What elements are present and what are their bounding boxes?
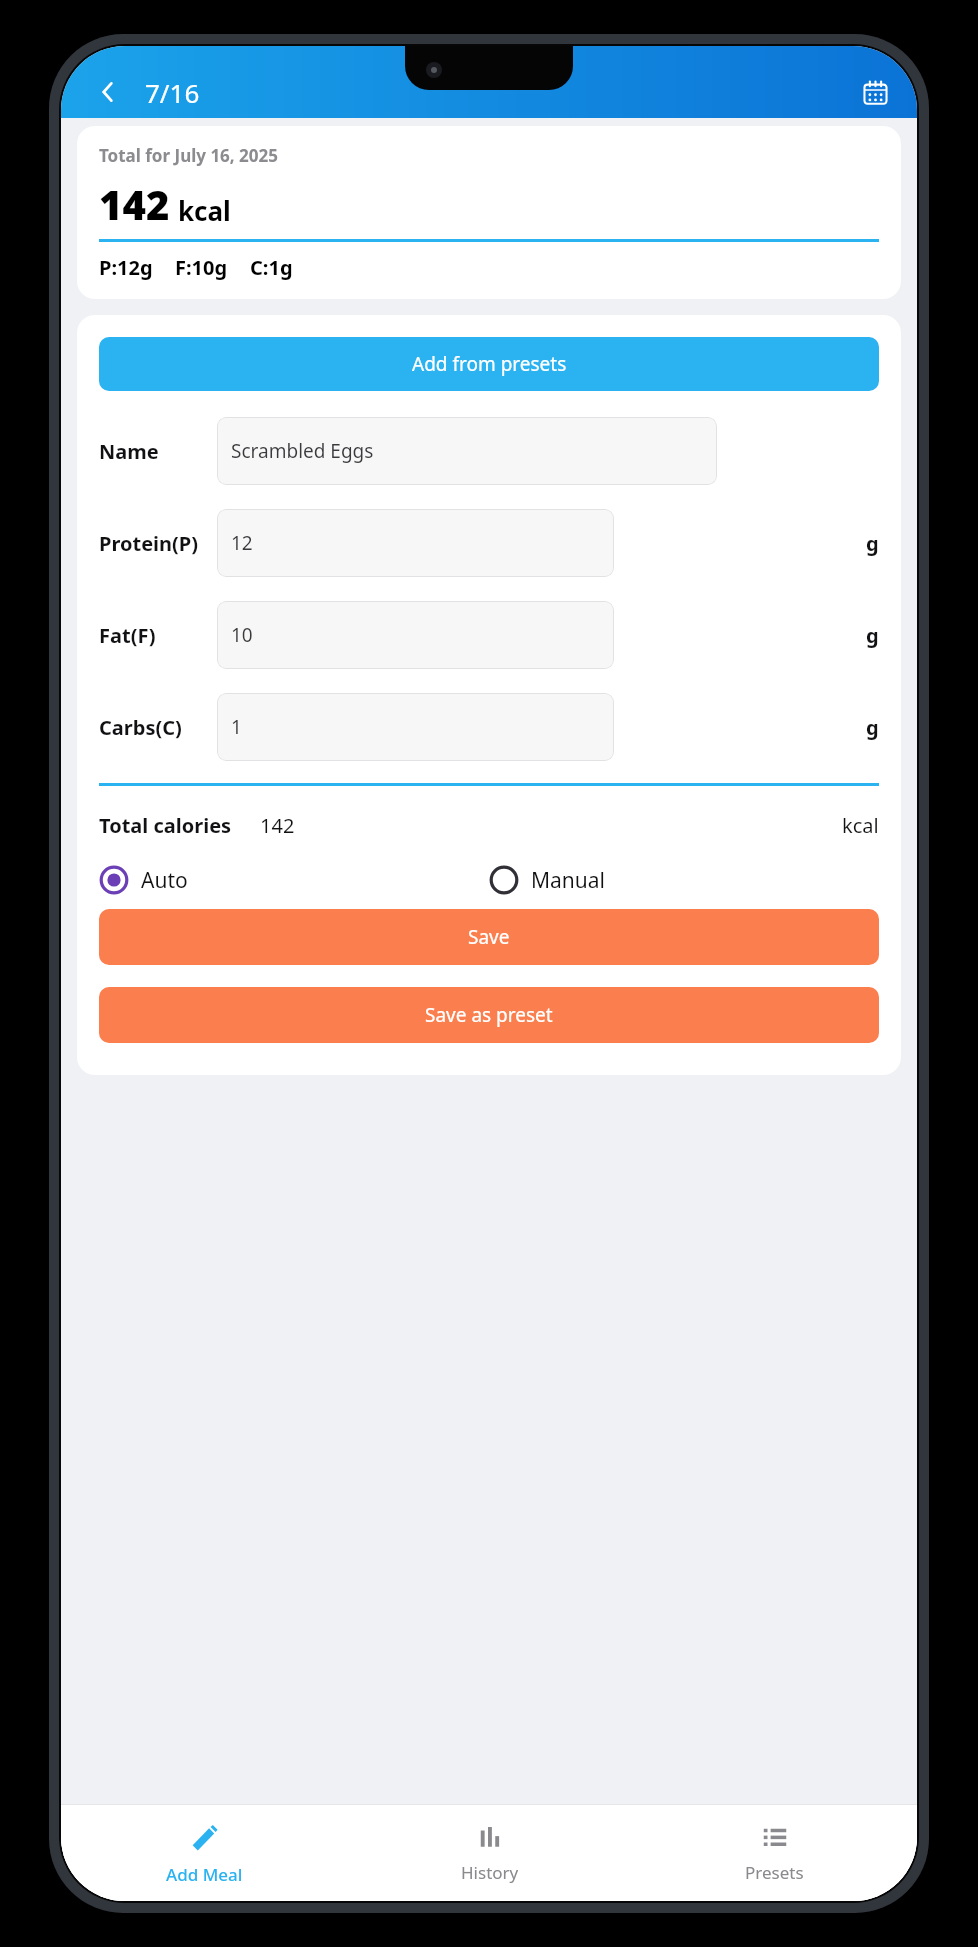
staticText: Save: [468, 924, 510, 950]
staticText: Scrambled Eggs: [231, 438, 374, 464]
button[interactable]: Presets: [632, 1805, 917, 1901]
staticText: Manual: [531, 866, 605, 895]
button[interactable]: Add from presets: [99, 337, 879, 391]
staticText: Carbs(C): [99, 714, 182, 741]
button[interactable]: Save: [99, 909, 879, 965]
button[interactable]: Add Meal: [61, 1805, 347, 1901]
staticText: Add Meal: [166, 1863, 243, 1886]
button[interactable]: Scrambled Eggs: [217, 417, 717, 485]
staticText: g: [866, 530, 879, 557]
staticText: 10: [231, 622, 253, 648]
staticText: F:10g: [175, 254, 228, 281]
staticText: Total for July 16, 2025: [99, 144, 278, 167]
button[interactable]: Save as preset: [99, 987, 879, 1043]
button[interactable]: Back: [87, 71, 129, 113]
staticText: g: [866, 714, 879, 741]
staticText: 1: [231, 714, 242, 740]
button[interactable]: 10: [217, 601, 614, 669]
button[interactable]: Select date: [851, 68, 899, 116]
staticText: kcal: [842, 812, 879, 839]
staticText: Auto: [141, 866, 188, 895]
staticText: 142: [99, 177, 170, 231]
staticText: kcal: [178, 193, 231, 228]
staticText: Fat(F): [99, 622, 156, 649]
staticText: Total calories: [99, 812, 232, 839]
staticText: Name: [99, 438, 159, 465]
staticText: History: [461, 1861, 519, 1884]
button[interactable]: 1: [217, 693, 614, 761]
button[interactable]: 12: [217, 509, 614, 577]
staticText: C:1g: [250, 254, 293, 281]
staticText: Protein(P): [99, 530, 199, 557]
staticText: 142: [260, 812, 295, 839]
staticText: Save as preset: [425, 1002, 553, 1028]
button[interactable]: Manual: [489, 865, 879, 895]
staticText: 7/16: [145, 75, 200, 110]
staticText: Presets: [745, 1861, 804, 1884]
staticText: g: [866, 622, 879, 649]
staticText: Add from presets: [412, 351, 567, 377]
staticText: P:12g: [99, 254, 153, 281]
staticText: 12: [231, 530, 253, 556]
button[interactable]: History: [347, 1805, 632, 1901]
button[interactable]: Auto: [99, 865, 489, 895]
